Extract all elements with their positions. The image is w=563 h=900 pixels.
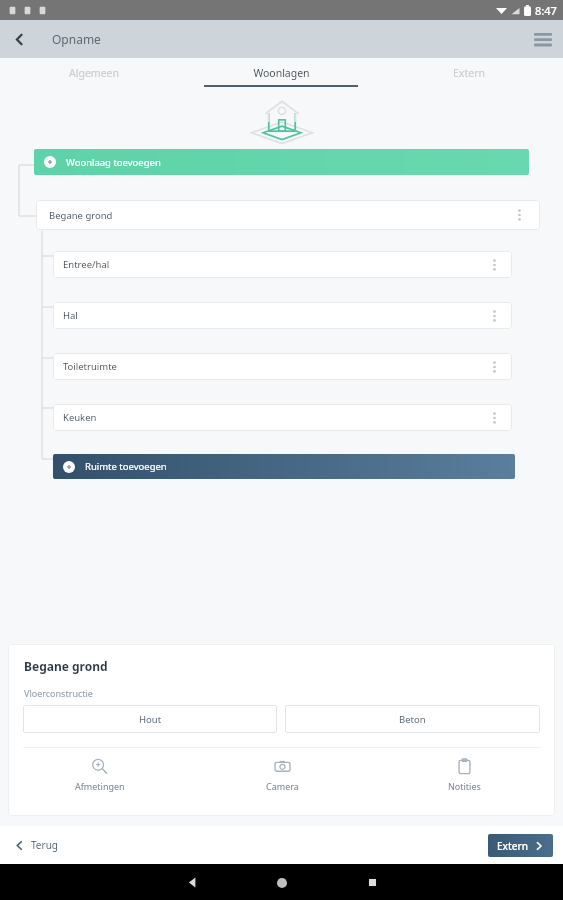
staticText: Begane grond [49, 209, 511, 222]
staticText: Extern [453, 66, 485, 80]
button[interactable]: Hout [23, 705, 277, 733]
other: Recents [367, 877, 378, 888]
button[interactable]: Afmetingen [8, 748, 191, 802]
button[interactable]: Toiletruimte [53, 353, 512, 380]
staticText: Extern [497, 839, 529, 853]
button[interactable]: More options [486, 251, 502, 278]
staticText: 8:47 [535, 3, 557, 18]
other: Back [186, 876, 199, 889]
button[interactable]: Algemeen [0, 58, 187, 87]
staticText: Hal [63, 309, 486, 322]
button[interactable]: Hal [53, 302, 512, 329]
button[interactable]: Begane grond [36, 200, 540, 230]
button[interactable]: More options [486, 353, 502, 380]
button[interactable]: Back [0, 20, 38, 58]
button[interactable]: Beton [285, 705, 540, 733]
button[interactable]: Entree/hal [53, 251, 512, 278]
staticText: Terug [31, 838, 58, 852]
staticText: Entree/hal [63, 258, 486, 271]
button[interactable]: Notities [373, 748, 555, 802]
staticText: Woonlagen [253, 66, 310, 80]
button[interactable]: More options [511, 200, 527, 230]
button[interactable]: Terug [14, 838, 58, 852]
staticText: Camera [266, 780, 299, 792]
staticText: Ruimte toevoegen [85, 460, 167, 473]
staticText: Hout [139, 713, 162, 726]
staticText: Afmetingen [75, 780, 125, 792]
button[interactable]: Extern [375, 58, 563, 87]
staticText: Woonlaag toevoegen [66, 156, 161, 169]
staticText: Begane grond [24, 658, 108, 674]
other: Home [276, 877, 288, 889]
staticText: Opname [52, 31, 101, 47]
staticText: Beton [399, 713, 426, 726]
button[interactable]: Woonlagen [187, 58, 375, 87]
button[interactable]: Camera [191, 748, 373, 802]
button[interactable]: More options [486, 302, 502, 329]
button[interactable]: More options [486, 404, 502, 431]
staticText: Toiletruimte [63, 360, 486, 373]
button[interactable]: Keuken [53, 404, 512, 431]
button[interactable]: Menu [523, 20, 563, 58]
staticText: Algemeen [69, 66, 119, 80]
staticText: Notities [448, 780, 481, 792]
staticText: Vloerconstructie [24, 687, 93, 699]
staticText: Keuken [63, 411, 486, 424]
button[interactable]: Extern [488, 834, 553, 857]
button[interactable]: Woonlaag toevoegen [34, 149, 529, 175]
button[interactable]: Ruimte toevoegen [53, 454, 515, 479]
